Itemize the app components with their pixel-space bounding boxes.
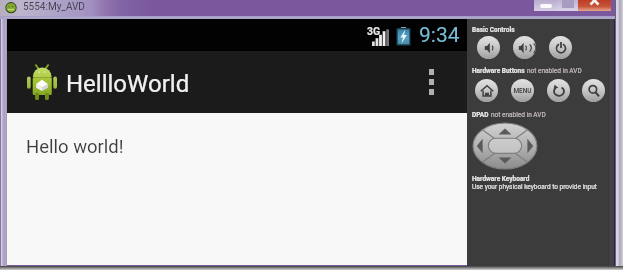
button[interactable]: Close (578, 0, 611, 11)
button[interactable]: Menu (511, 79, 534, 102)
staticText: Use your physical keyboard to provide in… (472, 183, 597, 191)
staticText: 3G (367, 25, 381, 37)
button[interactable]: Minimize (534, 0, 557, 11)
button[interactable]: More options (416, 57, 446, 107)
staticText: Basic Controls (472, 26, 515, 34)
staticText: Hardware Buttons (472, 67, 527, 75)
button[interactable]: Power (549, 36, 572, 59)
staticText: 9:34 (419, 23, 460, 48)
button[interactable]: Maximize (557, 0, 578, 11)
button[interactable]: Back (547, 79, 570, 102)
staticText: not enabled in AVD (527, 67, 582, 75)
staticText: HellloWorld (66, 70, 190, 98)
button[interactable]: Volume up (513, 36, 536, 59)
staticText: DPAD (472, 111, 491, 119)
staticText: Hardware Keyboard (472, 175, 530, 183)
staticText: Hello world! (26, 136, 124, 158)
staticText: MENU (511, 87, 534, 95)
button[interactable]: D-pad (473, 123, 537, 169)
staticText: 5554:My_AVD (23, 1, 85, 13)
button[interactable]: Volume down (477, 36, 500, 59)
staticText: not enabled in AVD (491, 111, 546, 119)
button[interactable]: Search (582, 79, 605, 102)
button[interactable]: Home (475, 79, 498, 102)
